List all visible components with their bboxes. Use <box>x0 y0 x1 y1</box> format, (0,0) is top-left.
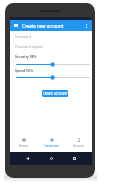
staticText: Account <box>73 144 84 148</box>
button[interactable]: Browse <box>10 134 38 152</box>
staticText: Create new account <box>22 23 64 29</box>
staticText: Password <box>15 34 31 39</box>
button[interactable]: Password (again) <box>10 43 92 51</box>
button[interactable]: Password <box>10 32 92 40</box>
staticText: Browse <box>19 144 29 148</box>
button[interactable]: Home <box>46 153 57 164</box>
button[interactable]: Create new <box>38 134 65 152</box>
staticText: Password (again) <box>15 44 43 49</box>
button[interactable]: Menu <box>10 20 21 31</box>
staticText: Speed 56% <box>15 68 34 73</box>
button[interactable]: Back <box>22 153 33 164</box>
staticText: Create new <box>44 144 59 148</box>
button[interactable]: More options <box>81 20 92 31</box>
button[interactable]: Recents <box>69 153 80 164</box>
button[interactable]: Account <box>65 134 92 152</box>
staticText: Security 58% <box>15 54 37 59</box>
staticText: CREATE ACCOUNT <box>43 92 68 96</box>
button[interactable]: CREATE ACCOUNT <box>42 90 68 97</box>
